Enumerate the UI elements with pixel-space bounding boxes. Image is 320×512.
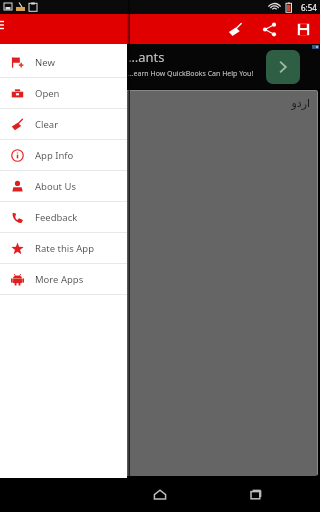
button[interactable]: Feedback: [0, 202, 127, 232]
button[interactable]: Home: [130, 478, 190, 512]
staticText: App Info: [35, 149, 74, 162]
button[interactable]: New: [0, 47, 127, 77]
button[interactable]: Share: [256, 16, 282, 42]
button[interactable]: Recent apps: [225, 478, 285, 512]
staticText: Rate this App: [35, 242, 95, 255]
staticText: Feedback: [35, 211, 78, 224]
staticText: 6:54: [301, 2, 317, 13]
button[interactable]: About Us: [0, 171, 127, 201]
button[interactable]: App Info: [0, 140, 127, 170]
button[interactable]: Ad call to action: [266, 50, 300, 84]
button[interactable]: Clear: [0, 109, 127, 139]
staticText: …ants: [128, 48, 165, 66]
button[interactable]: Rate this App: [0, 233, 127, 263]
button[interactable]: Save: [290, 16, 316, 42]
button[interactable]: More Apps: [0, 264, 127, 294]
button[interactable]: …ants: [0, 44, 320, 89]
staticText: More Apps: [35, 273, 84, 286]
staticText: New: [35, 56, 55, 69]
button[interactable]: اردو: [2, 90, 318, 476]
staticText: Open: [35, 87, 60, 100]
staticText: About Us: [35, 180, 76, 193]
button[interactable]: Clear: [222, 16, 248, 42]
button[interactable]: Open navigation drawer: [0, 20, 4, 30]
staticText: Clear: [35, 118, 59, 131]
button[interactable]: Open: [0, 78, 127, 108]
staticText: اردو: [291, 97, 310, 110]
staticText: …earn How QuickBooks Can Help You!: [128, 69, 254, 79]
